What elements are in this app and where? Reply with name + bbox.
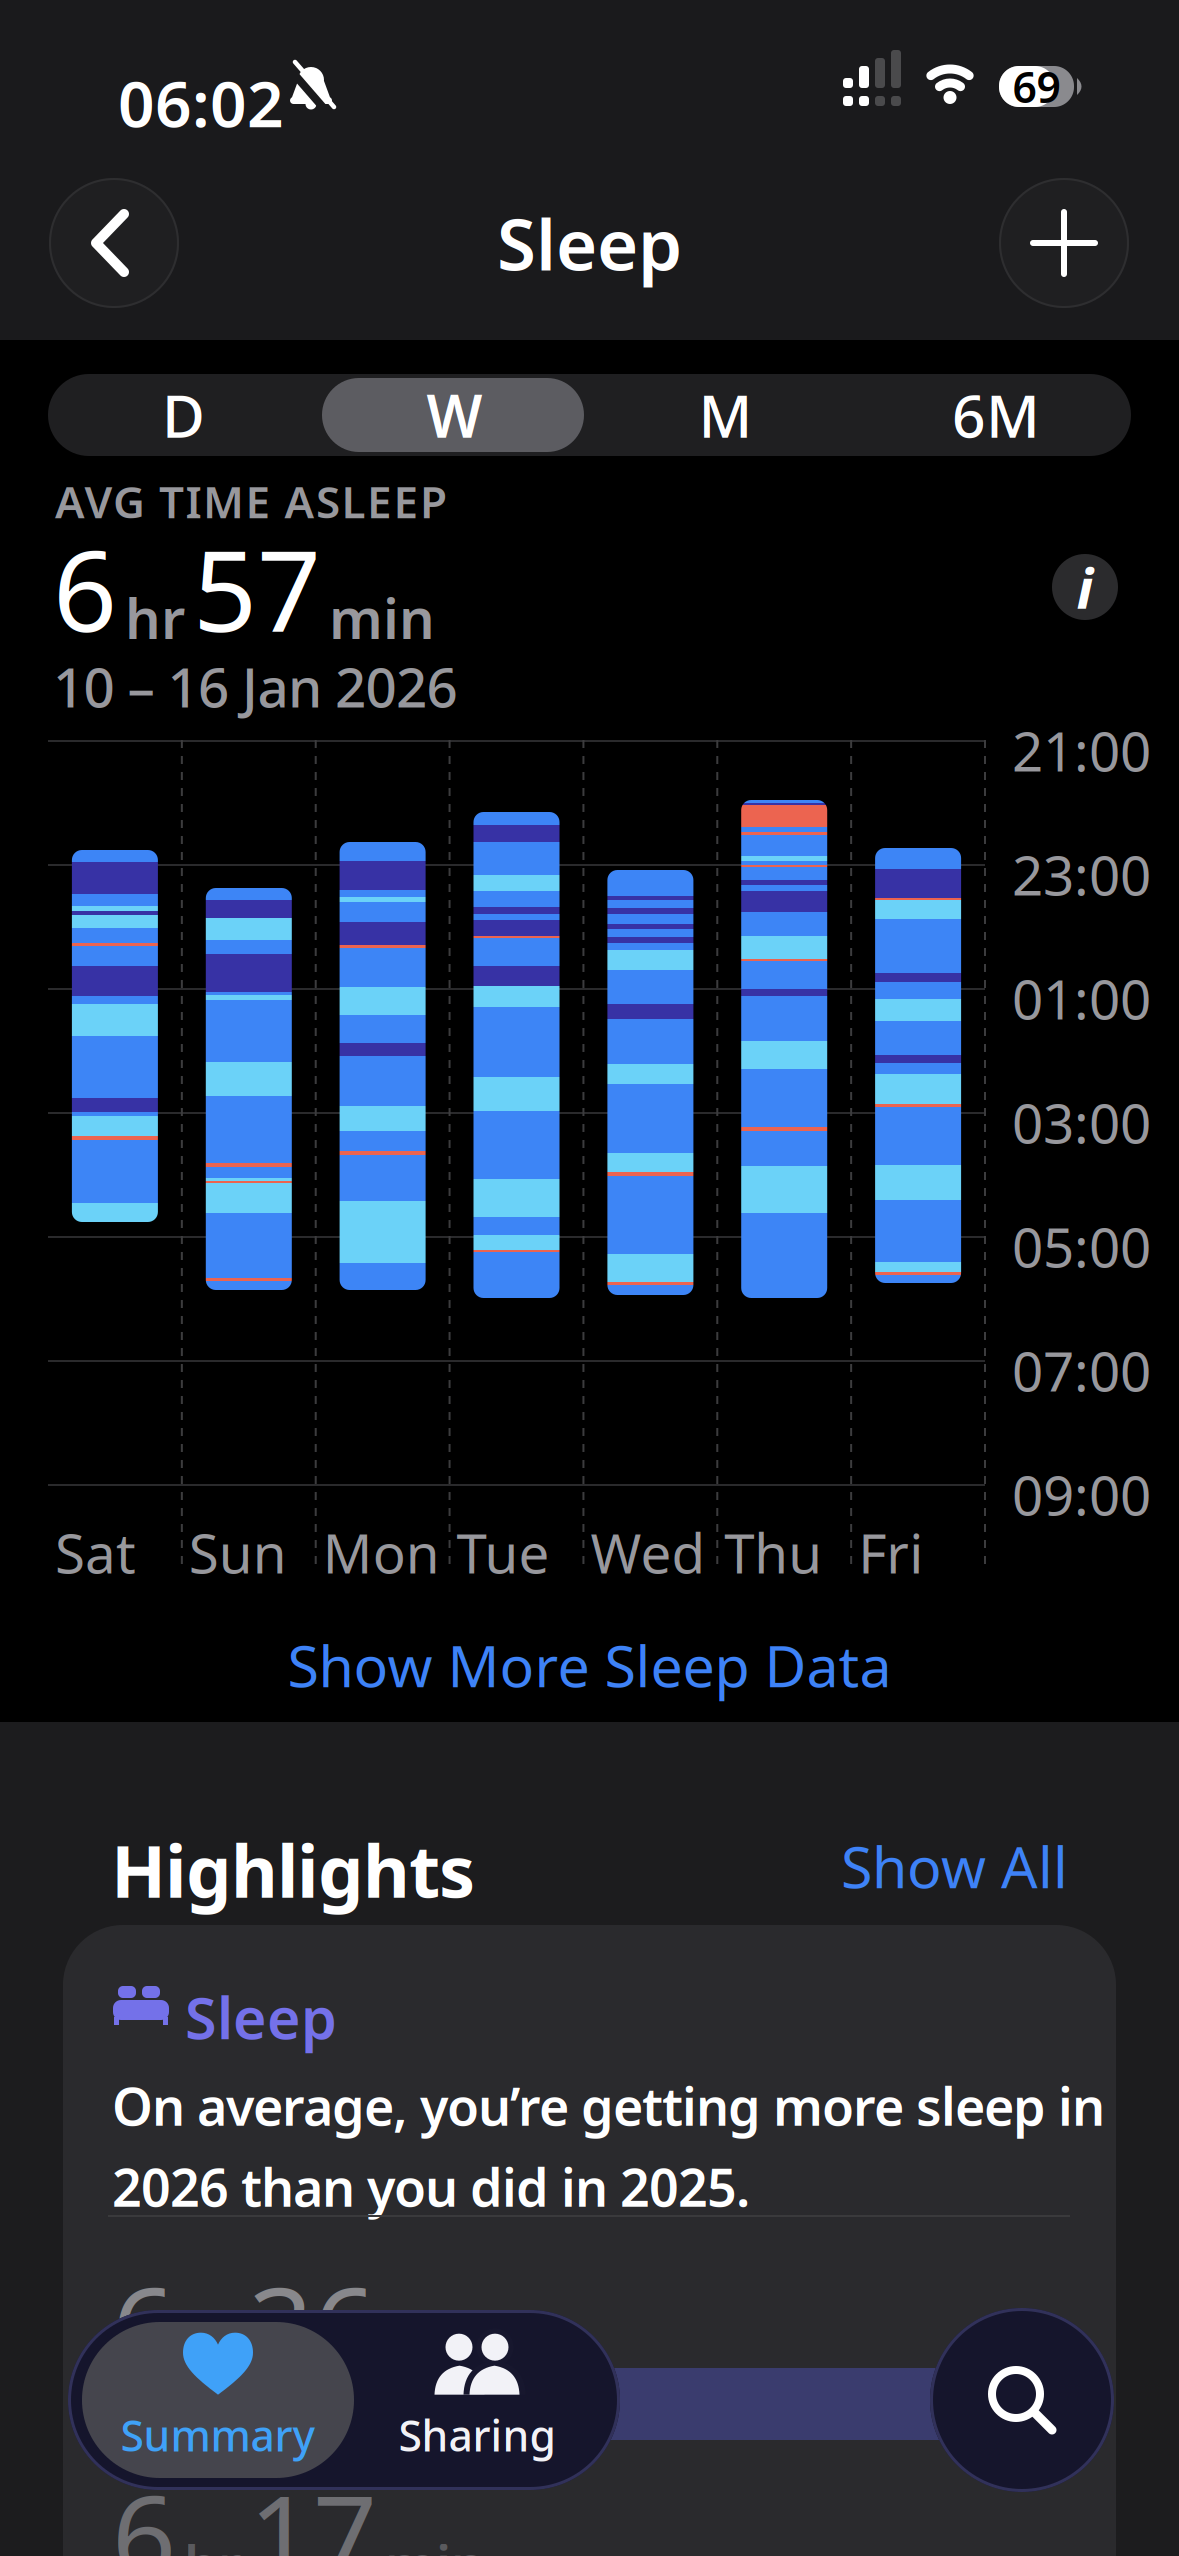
button[interactable]: Show More Sleep Data <box>0 1630 1179 1700</box>
button[interactable]: Back <box>49 178 179 308</box>
staticText: 6M <box>952 376 1040 454</box>
staticText: D <box>162 376 205 454</box>
staticText: Sat <box>55 1516 136 1589</box>
staticText: 10 – 16 Jan 2026 <box>53 650 457 723</box>
staticText: hr <box>184 2320 241 2391</box>
staticText: AVG TIME ASLEEP <box>55 472 447 530</box>
staticText: 07:00 <box>1012 1334 1151 1407</box>
staticText: Show More Sleep Data <box>287 1627 891 1703</box>
staticText: 23:00 <box>1012 838 1151 911</box>
button[interactable]: Summary <box>82 2310 354 2486</box>
button[interactable]: D <box>48 374 319 456</box>
staticText: W <box>426 376 482 454</box>
staticText: hr <box>184 2528 241 2556</box>
button[interactable]: Search <box>930 2308 1114 2492</box>
button[interactable]: W <box>319 374 590 456</box>
staticText: 03:00 <box>1012 1086 1151 1159</box>
staticText: 05:00 <box>1012 1210 1151 1283</box>
staticText: Tue <box>457 1516 550 1589</box>
staticText: Mon <box>323 1516 440 1589</box>
staticText: 36 <box>249 2251 377 2400</box>
staticText: On average, you’re getting more sleep in… <box>112 2071 1105 2221</box>
button[interactable]: 6M <box>861 374 1131 456</box>
button[interactable]: Add Data <box>999 178 1129 308</box>
button[interactable]: Show All <box>841 1828 1068 1904</box>
staticText: min <box>385 2528 485 2556</box>
button[interactable]: Info <box>1052 554 1118 620</box>
staticText: M <box>698 376 752 454</box>
button[interactable]: M <box>590 374 861 456</box>
staticText: Highlights <box>111 1822 475 1918</box>
staticText: hr <box>125 580 185 654</box>
staticText: i <box>1076 550 1093 624</box>
staticText: 6 <box>112 2251 176 2400</box>
staticText: min <box>329 580 435 654</box>
staticText: 57 <box>193 514 321 663</box>
staticText: Sleep <box>185 1979 337 2055</box>
staticText: Summary <box>120 2407 315 2463</box>
staticText: 69 <box>1012 58 1060 115</box>
button[interactable]: Sharing <box>352 2310 602 2486</box>
staticText: Wed <box>590 1516 705 1589</box>
staticText: Fri <box>858 1516 923 1589</box>
staticText: Sun <box>189 1516 287 1589</box>
staticText: Sleep <box>497 196 682 290</box>
staticText: Sharing <box>398 2407 555 2463</box>
staticText: 01:00 <box>1012 962 1151 1035</box>
staticText: Show All <box>841 1828 1068 1904</box>
staticText: 17 <box>249 2459 377 2556</box>
staticText: 09:00 <box>1012 1458 1151 1531</box>
staticText: 6 <box>112 2459 176 2556</box>
staticText: 21:00 <box>1012 714 1151 787</box>
staticText: 6 <box>53 514 117 663</box>
staticText: Thu <box>724 1516 822 1589</box>
staticText: 06:02 <box>118 60 284 145</box>
staticText: min <box>385 2320 485 2391</box>
